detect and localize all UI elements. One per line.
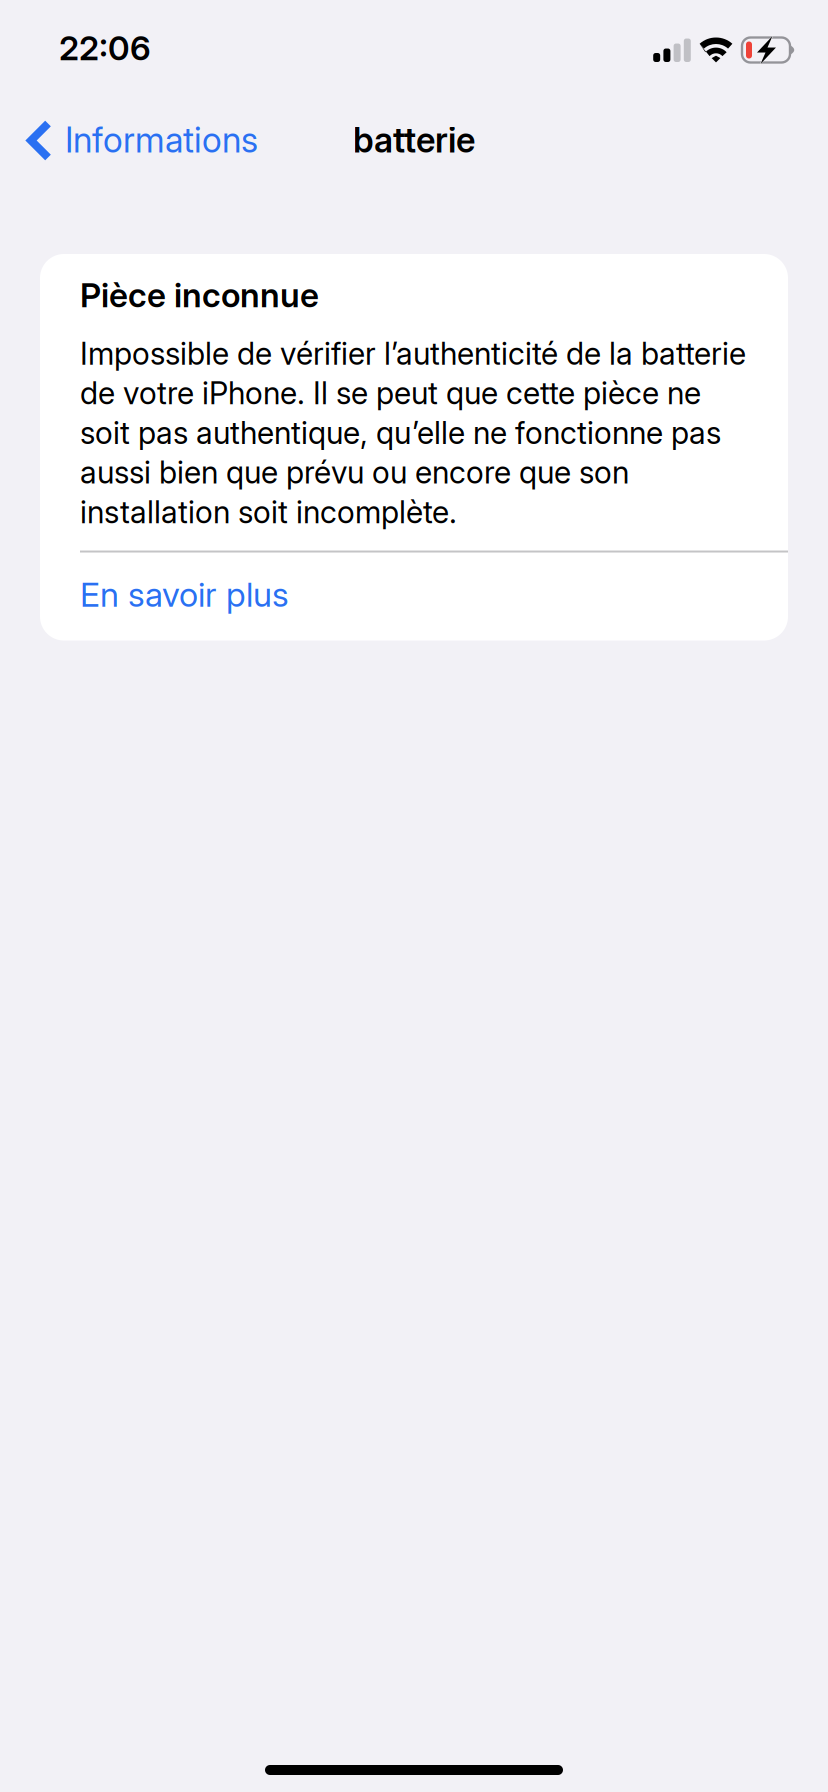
staticText: Informations <box>65 119 258 161</box>
button[interactable]: En savoir plus <box>40 552 788 640</box>
button[interactable]: Retour à Informations <box>0 96 278 184</box>
staticText: Impossible de vérifier l’authenticité de… <box>80 335 746 530</box>
staticText: 22:06 <box>59 28 151 68</box>
staticText: Pièce inconnue <box>80 275 319 315</box>
staticText: En savoir plus <box>80 574 289 615</box>
staticText: batterie <box>353 119 475 161</box>
